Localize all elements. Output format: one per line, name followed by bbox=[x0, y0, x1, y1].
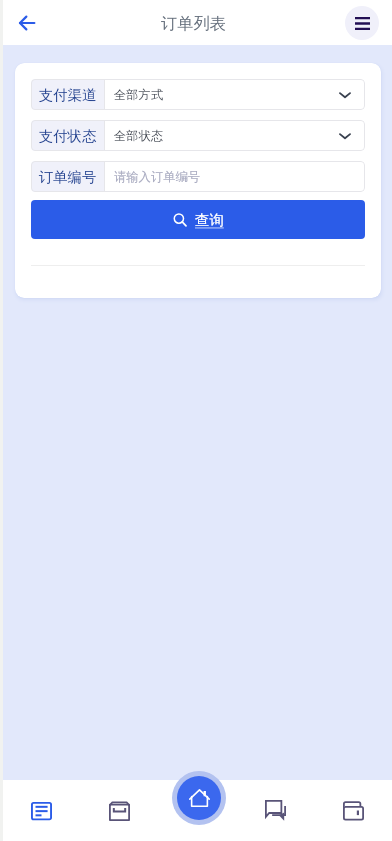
button[interactable]: Back bbox=[9, 5, 45, 41]
staticText: 支付渠道 bbox=[39, 86, 97, 104]
button[interactable]: Orders bbox=[3, 780, 80, 841]
button[interactable]: 支付渠道 bbox=[31, 79, 365, 110]
button[interactable]: Home bbox=[177, 776, 221, 820]
button[interactable]: Wallet bbox=[314, 780, 392, 841]
staticText: 支付状态 bbox=[39, 127, 97, 145]
button[interactable]: Inventory bbox=[80, 780, 158, 841]
staticText: 订单编号 bbox=[39, 168, 97, 186]
button[interactable]: 订单编号 bbox=[31, 161, 365, 192]
button[interactable]: Menu bbox=[345, 6, 379, 40]
staticText: 请输入订单编号 bbox=[114, 169, 201, 184]
button[interactable]: 查询 bbox=[31, 200, 365, 239]
button[interactable]: Messages bbox=[236, 780, 314, 841]
staticText: 全部状态 bbox=[114, 128, 164, 143]
staticText: 全部方式 bbox=[114, 87, 164, 102]
button[interactable]: 支付状态 bbox=[31, 120, 365, 151]
staticText: 查询 bbox=[195, 211, 224, 229]
staticText: 订单列表 bbox=[161, 13, 226, 33]
